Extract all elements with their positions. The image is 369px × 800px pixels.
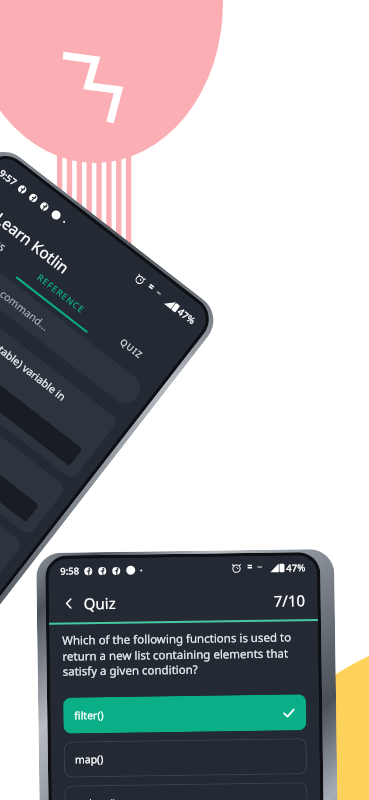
button[interactable]: Declare a var (mutable) variable xyxy=(0,336,67,536)
button[interactable]: Create a list of items xyxy=(0,392,23,592)
button[interactable]: filter() xyxy=(63,694,306,734)
button[interactable]: map() xyxy=(64,738,307,778)
button[interactable]: Back xyxy=(61,595,77,612)
button[interactable]: Search for a command... xyxy=(0,234,146,409)
staticText: filter() xyxy=(74,708,104,722)
staticText: 47% xyxy=(175,305,198,327)
staticText: 7/10 xyxy=(273,590,306,611)
staticText: Which of the following functions is used… xyxy=(62,629,301,679)
staticText: Learn Kotlin xyxy=(0,207,74,278)
button[interactable]: BASICS xyxy=(0,206,29,276)
button[interactable]: QUIZ xyxy=(88,316,171,387)
button[interactable]: Declare a val (immutable) variable in Ko… xyxy=(0,269,119,480)
staticText: map() xyxy=(75,752,104,766)
staticText: QUIZ xyxy=(118,335,146,361)
staticText: Declare a val (immutable) variable in Ko… xyxy=(0,283,69,415)
staticText: reduce() xyxy=(75,796,117,800)
button[interactable]: reduce() xyxy=(64,782,308,800)
button[interactable]: REFERENCE xyxy=(16,260,100,333)
staticText: Quiz xyxy=(84,593,116,613)
staticText: 9:57 xyxy=(0,167,19,189)
staticText: REFERENCE xyxy=(35,271,87,315)
staticText: BASICS xyxy=(0,222,8,254)
staticText: Search for a command... xyxy=(0,249,52,333)
staticText: 47% xyxy=(286,561,305,574)
staticText: 9:58 xyxy=(60,564,79,578)
